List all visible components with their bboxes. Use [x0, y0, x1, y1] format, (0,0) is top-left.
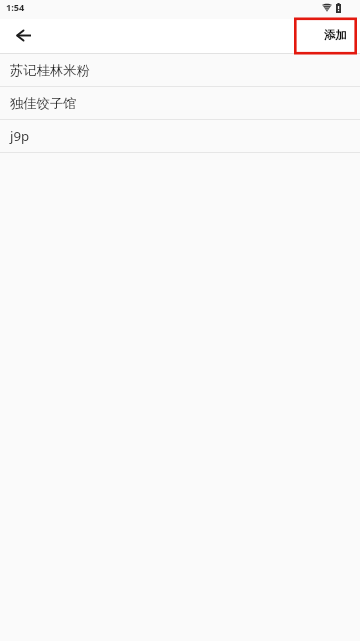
button[interactable]: 添加 — [299, 19, 360, 53]
staticText: j9p — [10, 127, 30, 145]
staticText: 添加 — [324, 28, 347, 42]
button[interactable]: 苏记桂林米粉 — [0, 54, 360, 87]
staticText: 独佳饺子馆 — [10, 95, 77, 112]
button[interactable]: 返回 — [9, 21, 37, 49]
staticText: 苏记桂林米粉 — [10, 62, 90, 79]
button[interactable]: j9p — [0, 120, 360, 153]
staticText: 1:54 — [6, 1, 25, 14]
button[interactable]: 独佳饺子馆 — [0, 87, 360, 120]
